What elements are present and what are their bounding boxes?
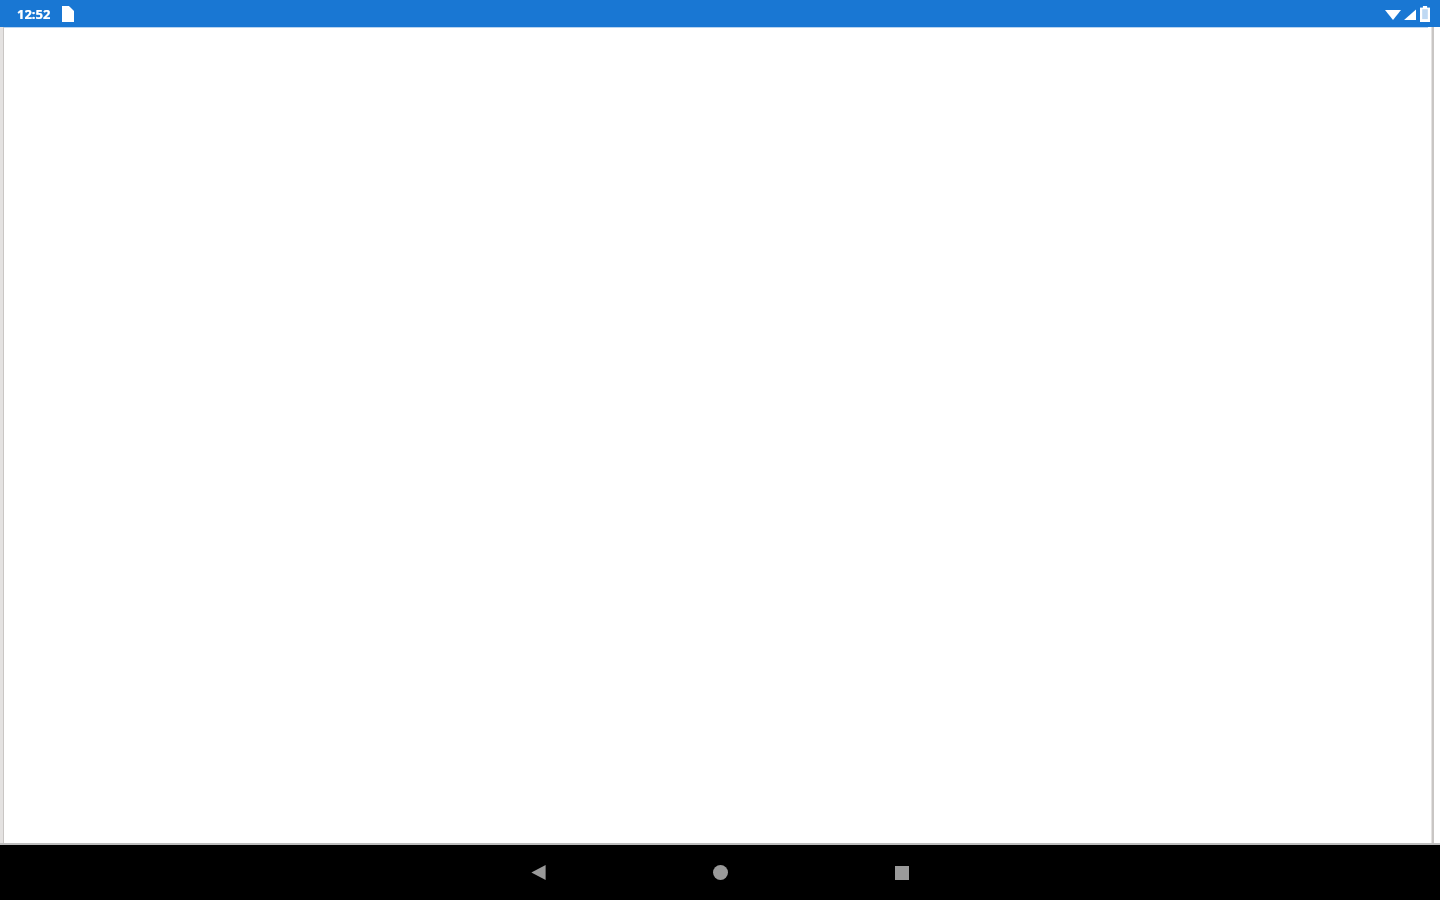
staticText: 12:52 [17, 5, 51, 23]
button[interactable]: Home [690, 845, 750, 900]
button[interactable]: Recent apps [872, 845, 932, 900]
button[interactable]: Back [508, 845, 568, 900]
